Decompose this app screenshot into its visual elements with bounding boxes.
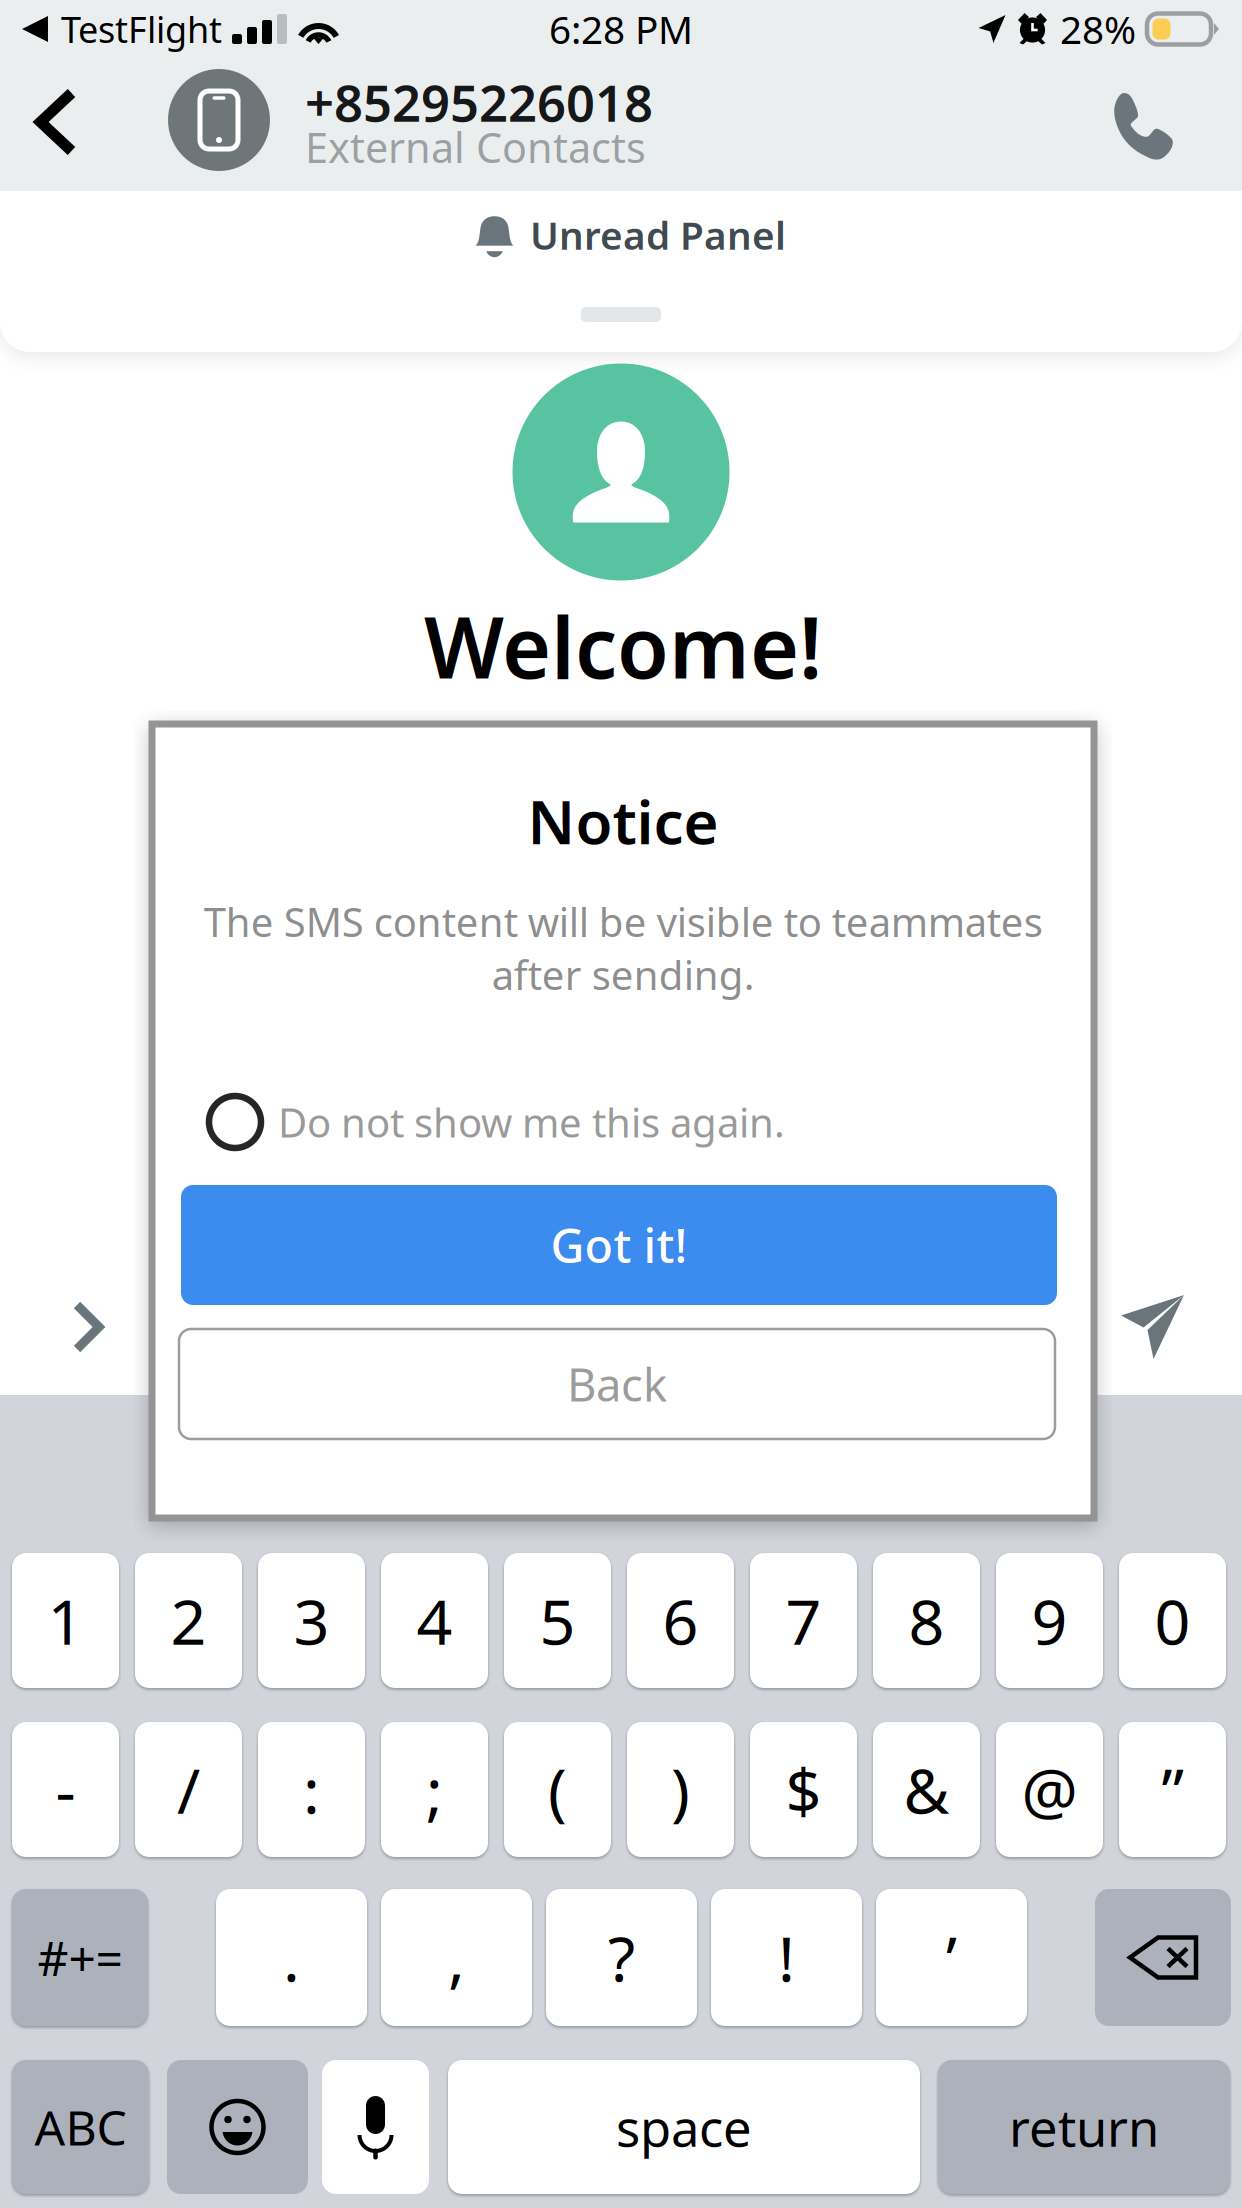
staticText: .	[283, 1916, 300, 1999]
button[interactable]: ,	[381, 1889, 532, 2026]
staticText: 28%	[1060, 3, 1136, 55]
button[interactable]: .	[216, 1889, 367, 2026]
button[interactable]: 0	[1119, 1553, 1226, 1688]
button[interactable]: ;	[381, 1722, 488, 1857]
staticText: 6:28 PM	[549, 3, 693, 55]
button[interactable]: /	[135, 1722, 242, 1857]
staticText: return	[1009, 2093, 1159, 2161]
staticText: The SMS content will be visible to teamm…	[203, 895, 1042, 1001]
button[interactable]: ”	[1119, 1722, 1226, 1857]
staticText: /	[177, 1748, 200, 1831]
staticText: Got it!	[550, 1214, 687, 1276]
staticText: Back	[567, 1354, 667, 1414]
staticText: !	[778, 1916, 795, 1999]
staticText: 3	[293, 1579, 329, 1662]
button[interactable]: Emoji	[167, 2060, 308, 2194]
staticText: Unread Panel	[530, 209, 786, 260]
staticText: #+=	[37, 1926, 122, 1989]
staticText: 9	[1031, 1579, 1067, 1662]
staticText: ’	[946, 1916, 957, 1999]
button[interactable]: 4	[381, 1553, 488, 1688]
staticText: Welcome!	[424, 590, 822, 702]
button[interactable]: Call	[1084, 64, 1196, 190]
staticText: +85295226018	[305, 68, 653, 136]
button[interactable]: Back	[179, 1329, 1055, 1439]
staticText: 5	[539, 1579, 575, 1662]
staticText: 8	[908, 1579, 944, 1662]
button[interactable]: Send	[1108, 1282, 1198, 1372]
button[interactable]: 1	[12, 1553, 119, 1688]
staticText: 4	[416, 1579, 452, 1662]
button[interactable]: 7	[750, 1553, 857, 1688]
button[interactable]: space	[448, 2060, 920, 2194]
button[interactable]: $	[750, 1722, 857, 1857]
button[interactable]: -	[12, 1722, 119, 1857]
staticText: space	[616, 2093, 752, 2161]
staticText: 0	[1154, 1579, 1190, 1662]
staticText: ,	[448, 1916, 465, 1999]
staticText: 7	[785, 1579, 821, 1662]
button[interactable]: 5	[504, 1553, 611, 1688]
staticText: ”	[1161, 1748, 1183, 1831]
button[interactable]: (	[504, 1722, 611, 1857]
staticText: Notice	[527, 781, 718, 861]
button[interactable]: 3	[258, 1553, 365, 1688]
button[interactable]: Got it!	[181, 1185, 1057, 1305]
button[interactable]: Do not show me this again.	[152, 1077, 1094, 1167]
staticText: External Contacts	[305, 120, 646, 174]
button[interactable]: !	[711, 1889, 862, 2026]
button[interactable]: Dictation	[322, 2060, 429, 2194]
staticText: &	[903, 1748, 949, 1831]
staticText: TestFlight	[61, 5, 222, 53]
staticText: :	[303, 1748, 320, 1831]
button[interactable]: 6	[627, 1553, 734, 1688]
button[interactable]: Backspace	[1095, 1889, 1231, 2026]
button[interactable]: ’	[876, 1889, 1027, 2026]
button[interactable]: &	[873, 1722, 980, 1857]
staticText: (	[548, 1748, 567, 1831]
staticText: 1	[47, 1579, 83, 1662]
button[interactable]: 9	[996, 1553, 1103, 1688]
button[interactable]: #+=	[12, 1889, 148, 2026]
staticText: ?	[608, 1916, 635, 1999]
button[interactable]: 8	[873, 1553, 980, 1688]
staticText: $	[785, 1748, 821, 1831]
staticText: 6	[662, 1579, 698, 1662]
staticText: ABC	[34, 2095, 126, 2159]
staticText: Do not show me this again.	[278, 1095, 785, 1148]
button[interactable]: Back	[0, 59, 112, 185]
button[interactable]: @	[996, 1722, 1103, 1857]
staticText: 2	[170, 1579, 206, 1662]
button[interactable]: :	[258, 1722, 365, 1857]
button[interactable]: )	[627, 1722, 734, 1857]
staticText: )	[671, 1748, 690, 1831]
button[interactable]: return	[938, 2060, 1230, 2194]
staticText: -	[55, 1748, 75, 1831]
button[interactable]: 2	[135, 1553, 242, 1688]
button[interactable]: ?	[546, 1889, 697, 2026]
staticText: @	[1021, 1748, 1077, 1831]
staticText: ;	[426, 1748, 443, 1831]
button[interactable]: ABC	[12, 2060, 149, 2194]
button[interactable]: More options	[43, 1282, 133, 1372]
